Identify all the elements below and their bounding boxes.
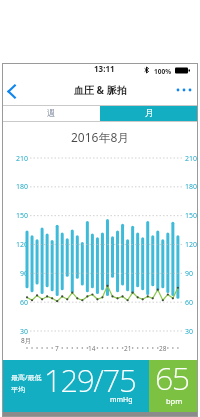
staticText: mmHg [110, 395, 133, 405]
staticText: 60 [185, 298, 194, 307]
staticText: 210 [185, 154, 198, 163]
staticText: 30 [20, 327, 29, 336]
staticText: 180 [16, 182, 29, 191]
staticText: 180 [185, 182, 198, 191]
button[interactable]: 月 [100, 105, 198, 122]
staticText: 平均 [11, 385, 25, 394]
staticText: 7 [55, 344, 59, 352]
staticText: 30 [185, 327, 194, 336]
staticText: 120 [16, 240, 29, 249]
staticText: 150 [16, 211, 29, 220]
staticText: 2016年8月 [71, 129, 130, 145]
staticText: 最高/最低 [11, 373, 42, 383]
staticText: 65 [155, 356, 189, 400]
staticText: 60 [20, 298, 29, 307]
staticText: 週 [47, 108, 56, 119]
staticText: 129/75 [44, 359, 136, 401]
staticText: 14 [88, 344, 96, 352]
button[interactable]: 65 [149, 360, 198, 412]
staticText: 28 [159, 344, 167, 352]
button[interactable]: 最高/最低 [2, 360, 149, 412]
staticText: 150 [185, 211, 198, 220]
button[interactable] [2, 77, 26, 103]
staticText: 8月 [21, 336, 32, 345]
staticText: 13:11 [94, 63, 115, 74]
button[interactable]: 週 [2, 105, 100, 122]
staticText: 90 [185, 269, 194, 278]
button[interactable] [170, 77, 198, 103]
staticText: 90 [20, 269, 29, 278]
staticText: 21 [124, 344, 132, 352]
staticText: 100% [154, 67, 172, 76]
staticText: 血圧 & 脈拍 [74, 83, 127, 97]
staticText: 210 [16, 154, 29, 163]
staticText: bpm [166, 396, 183, 406]
staticText: 120 [185, 240, 198, 249]
staticText: 月 [145, 108, 154, 119]
